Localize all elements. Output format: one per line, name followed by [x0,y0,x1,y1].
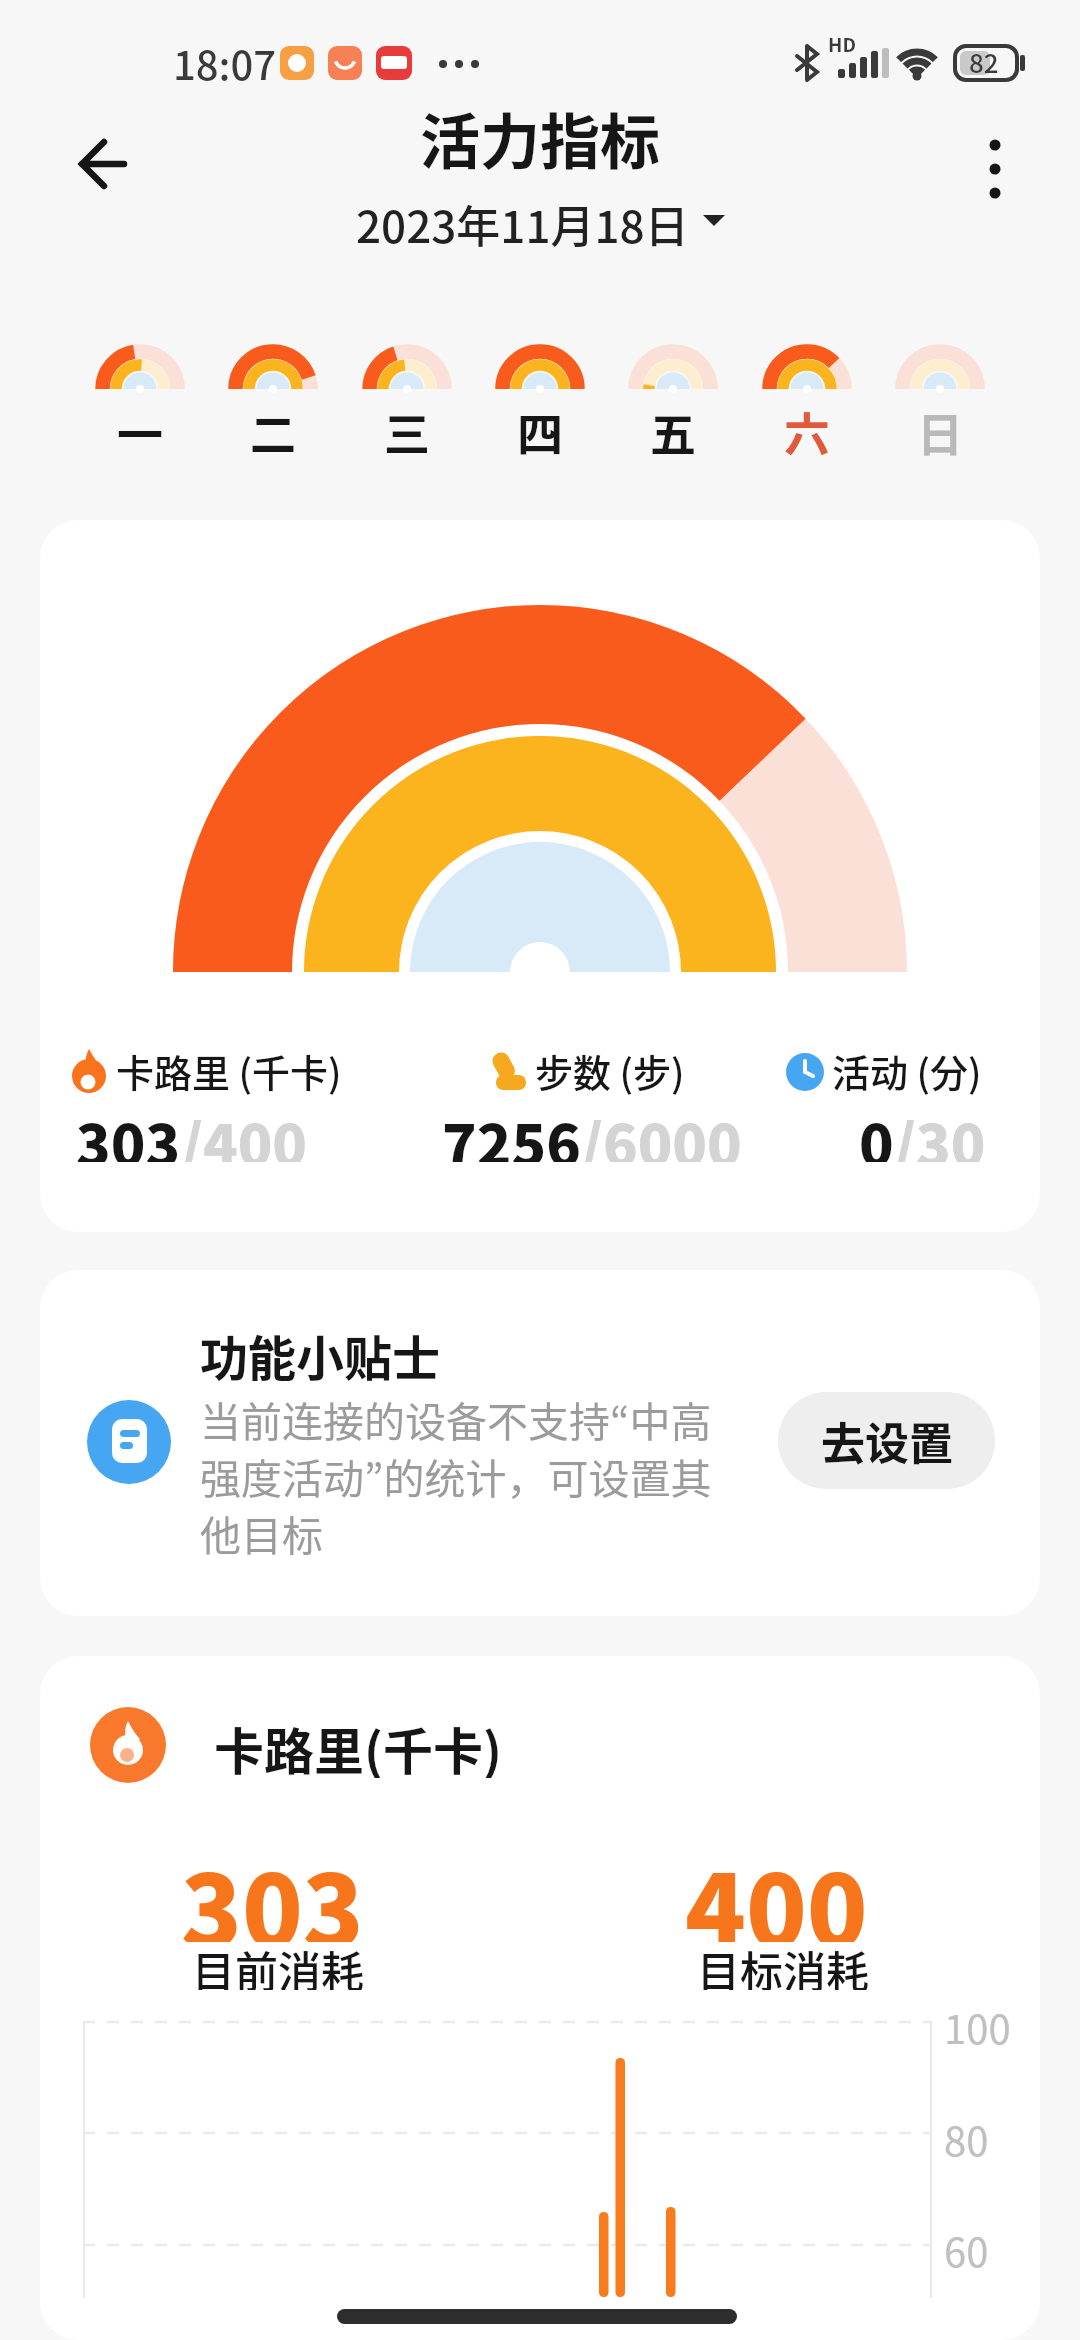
staticText: 一 [117,398,163,465]
staticText: 二 [250,398,296,465]
staticText: /6000 [581,1100,742,1162]
staticText: 18:07 [173,34,277,84]
staticText: /400 [181,1100,308,1162]
staticText: 四 [517,398,563,465]
button[interactable]: 四 [485,340,595,465]
staticText: 当前连接的设备不支持“中高 强度活动”的统计，可设置其 他目标 [200,1389,712,1562]
staticText: 100 [944,1998,1011,2046]
button[interactable]: 一 [85,340,195,465]
staticText: 去设置 [821,1409,953,1473]
button[interactable] [60,128,140,200]
button[interactable]: 2023年11月18日 [356,192,725,248]
staticText: 五 [650,398,696,465]
staticText: 60 [944,2221,989,2269]
staticText: /30 [894,1100,986,1162]
staticText: 400 [685,1832,868,1942]
staticText: 卡路里(千卡) [214,1712,502,1778]
staticText: 六 [784,398,830,465]
staticText: 目标消耗 [697,1938,869,1990]
staticText: 活力指标 [420,94,660,178]
button[interactable]: 去设置 [778,1392,995,1489]
staticText: 80 [944,2110,989,2158]
staticText: 82 [969,43,999,81]
button[interactable]: 二 [218,340,328,465]
staticText: 303 [76,1100,181,1162]
staticText: 功能小贴士 [200,1320,441,1384]
staticText: 三 [384,398,430,465]
button[interactable]: 五 [618,340,728,465]
staticText: HD [828,30,856,56]
button[interactable]: 六 [752,340,862,465]
staticText: 日 [917,398,963,465]
button[interactable]: 三 [352,340,462,465]
staticText: 卡路里 (千卡) [116,1043,351,1098]
staticText: 2023年11月18日 [356,192,689,248]
staticText: 7256 [442,1100,581,1162]
button[interactable]: 日 [885,340,995,465]
staticText: 活动 (分) [832,1043,991,1098]
staticText: 目前消耗 [192,1938,364,1990]
staticText: 303 [181,1832,364,1942]
staticText: 0 [859,1100,894,1162]
staticText: 步数 (步) [535,1043,694,1098]
button[interactable] [960,130,1030,220]
